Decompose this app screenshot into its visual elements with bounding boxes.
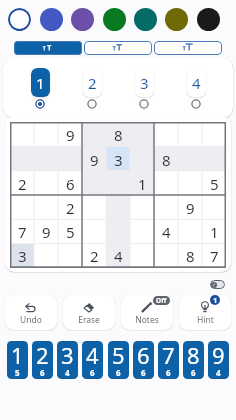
button[interactable]: 1	[130, 172, 154, 196]
staticText: 3	[140, 73, 149, 93]
button[interactable]: 4	[182, 68, 210, 109]
button[interactable]: 3	[57, 341, 78, 379]
button[interactable]: 3	[10, 244, 34, 268]
button[interactable]: 7	[202, 244, 226, 268]
button[interactable]	[58, 147, 82, 172]
button[interactable]: 6	[58, 172, 82, 196]
button[interactable]: Theme colour 7	[197, 8, 220, 31]
button[interactable]: Theme colour 3	[71, 8, 94, 31]
button[interactable]	[202, 196, 226, 220]
button[interactable]	[178, 172, 202, 196]
button[interactable]	[178, 220, 202, 244]
button[interactable]	[82, 172, 106, 196]
button[interactable]: 8	[106, 122, 130, 147]
button[interactable]: 1	[26, 68, 54, 109]
button[interactable]	[154, 244, 178, 268]
button[interactable]: 2	[58, 196, 82, 220]
button[interactable]: Hint	[179, 295, 231, 330]
button[interactable]	[10, 196, 34, 220]
staticText: 9	[186, 198, 195, 218]
staticText: 6	[166, 367, 171, 378]
button[interactable]: 5	[58, 220, 82, 244]
button[interactable]	[202, 147, 226, 172]
staticText: 8	[162, 150, 171, 170]
button[interactable]: Font size 3	[154, 41, 222, 55]
button[interactable]: 3	[130, 68, 158, 109]
button[interactable]: 9	[58, 122, 82, 147]
button[interactable]: 2	[32, 341, 53, 379]
button[interactable]	[130, 196, 154, 220]
button[interactable]: 7	[10, 220, 34, 244]
staticText: 3	[114, 150, 123, 170]
staticText: Off	[156, 296, 167, 305]
button[interactable]: Font size 1	[14, 41, 82, 55]
button[interactable]	[130, 244, 154, 268]
button[interactable]	[130, 122, 154, 147]
button[interactable]: 8	[178, 244, 202, 268]
button[interactable]: Theme colour 5	[134, 8, 157, 31]
button[interactable]	[154, 172, 178, 196]
button[interactable]: 8	[183, 341, 204, 379]
button[interactable]: Theme colour 4	[103, 8, 126, 31]
button[interactable]	[34, 196, 58, 220]
staticText: 9	[90, 150, 99, 170]
staticText: 4	[162, 222, 171, 242]
button[interactable]: 2	[78, 68, 106, 109]
staticText: 2	[18, 174, 27, 194]
button[interactable]: 9	[208, 341, 229, 379]
button[interactable]	[178, 122, 202, 147]
staticText: 2	[36, 341, 49, 370]
button[interactable]	[154, 196, 178, 220]
button[interactable]: 3	[106, 147, 130, 172]
button[interactable]	[82, 220, 106, 244]
staticText: 1	[213, 295, 218, 305]
staticText: 7	[162, 341, 175, 370]
button[interactable]: 1	[202, 220, 226, 244]
button[interactable]: 4	[82, 341, 103, 379]
button[interactable]: Theme colour 2	[40, 8, 63, 31]
button[interactable]: 8	[154, 147, 178, 172]
staticText: 6	[137, 341, 150, 370]
button[interactable]	[202, 122, 226, 147]
staticText: 6	[191, 367, 196, 378]
button[interactable]: 9	[82, 147, 106, 172]
button[interactable]	[82, 196, 106, 220]
button[interactable]	[82, 122, 106, 147]
staticText: 4	[192, 73, 201, 93]
button[interactable]: 1	[7, 341, 28, 379]
staticText: 8	[187, 341, 200, 370]
button[interactable]: 6	[133, 341, 154, 379]
staticText: 1	[138, 174, 147, 194]
button[interactable]: 4	[106, 244, 130, 268]
button[interactable]: Notes	[121, 295, 173, 330]
button[interactable]: 4	[154, 220, 178, 244]
button[interactable]: Theme colour 1	[8, 8, 31, 31]
button[interactable]: Toggle auto notes	[210, 280, 225, 289]
button[interactable]	[130, 147, 154, 172]
button[interactable]	[106, 172, 130, 196]
button[interactable]: 2	[10, 172, 34, 196]
button[interactable]: 9	[34, 220, 58, 244]
button[interactable]: 5	[202, 172, 226, 196]
button[interactable]: Font size 2	[84, 41, 152, 55]
button[interactable]	[34, 122, 58, 147]
button[interactable]: Theme colour 6	[165, 8, 188, 31]
staticText: 8	[186, 246, 195, 266]
button[interactable]	[10, 122, 34, 147]
button[interactable]: 9	[178, 196, 202, 220]
button[interactable]	[154, 122, 178, 147]
button[interactable]: Erase	[63, 295, 115, 330]
button[interactable]: 7	[158, 341, 179, 379]
button[interactable]	[58, 244, 82, 268]
button[interactable]: 5	[108, 341, 129, 379]
button[interactable]	[34, 244, 58, 268]
button[interactable]	[10, 147, 34, 172]
button[interactable]	[34, 172, 58, 196]
button[interactable]	[130, 220, 154, 244]
button[interactable]: 2	[82, 244, 106, 268]
button[interactable]: Undo	[5, 295, 57, 330]
